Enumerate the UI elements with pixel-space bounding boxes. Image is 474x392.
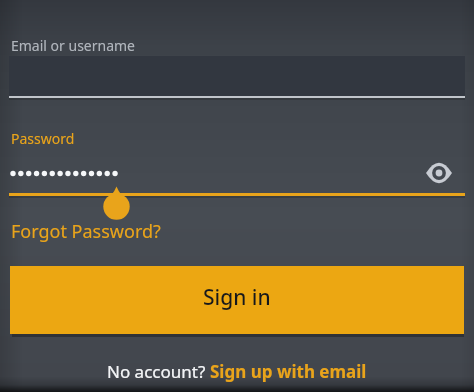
staticText: Sign in xyxy=(203,283,271,312)
staticText: Forgot Password? xyxy=(11,219,161,244)
button[interactable]: No account? xyxy=(107,360,367,383)
button[interactable] xyxy=(425,163,453,183)
button[interactable]: Forgot Password? xyxy=(11,219,161,244)
staticText: Password xyxy=(11,129,75,148)
button[interactable]: Sign in xyxy=(10,266,464,334)
staticText: Sign up with email xyxy=(210,360,367,383)
staticText: No account? xyxy=(107,360,210,383)
staticText: Email or username xyxy=(11,36,136,55)
